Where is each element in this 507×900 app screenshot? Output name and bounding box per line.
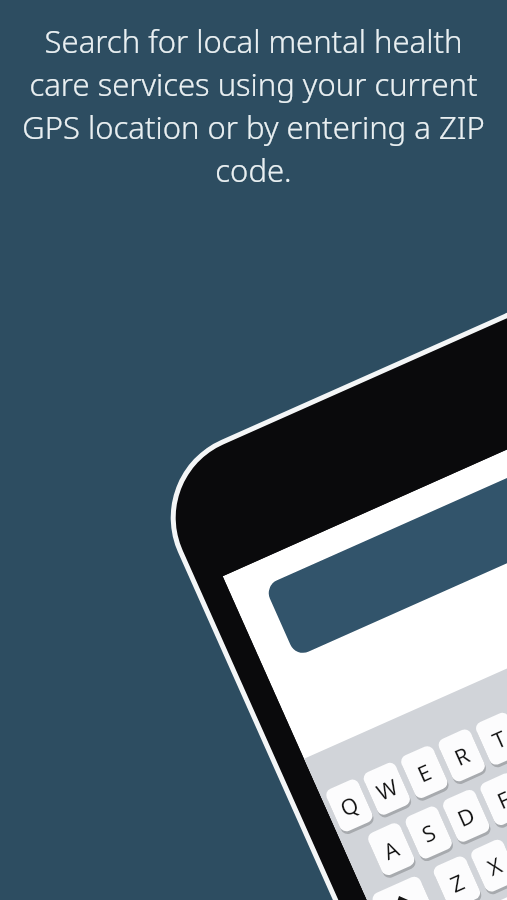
- other: Phone showing ZIP code search screen: [0, 0, 507, 900]
- staticText: Search for local mental health care serv…: [12, 20, 495, 191]
- button[interactable]: Search for local mental health care serv…: [12, 20, 495, 191]
